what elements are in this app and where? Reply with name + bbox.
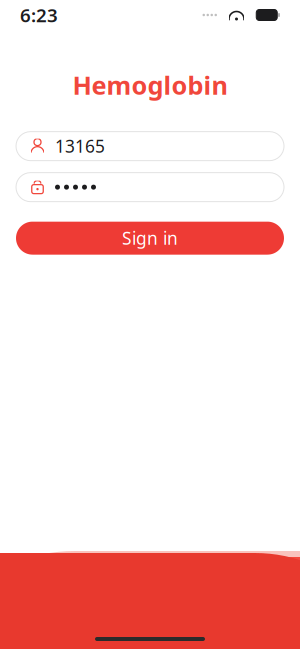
staticText: Hemoglobin <box>72 68 227 102</box>
staticText: 6:23 <box>20 3 58 27</box>
staticText: 13165 <box>55 135 105 158</box>
staticText: Sign in <box>122 227 178 250</box>
button[interactable]: Sign in <box>16 222 284 255</box>
